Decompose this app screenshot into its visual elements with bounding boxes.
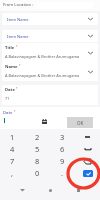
button[interactable]: space <box>75 143 100 155</box>
staticText: , <box>11 168 14 178</box>
button[interactable]: 1 <box>0 131 25 143</box>
staticText: 1 <box>10 132 15 142</box>
staticText: . <box>61 168 64 178</box>
button[interactable]: Item Name <box>2 30 98 42</box>
button[interactable]: Home <box>44 184 56 196</box>
button[interactable]: Item Name <box>2 13 98 25</box>
staticText: 5 <box>35 144 40 154</box>
staticText: Title <box>5 45 15 51</box>
button[interactable]: 8 <box>25 155 50 167</box>
button[interactable]: ok <box>75 167 100 179</box>
staticText: Name <box>5 64 18 70</box>
button[interactable]: , <box>0 167 25 179</box>
button[interactable]: Recents <box>72 184 84 196</box>
staticText: * <box>15 87 18 91</box>
button[interactable]: . <box>50 167 75 179</box>
staticText: 7 <box>10 156 15 166</box>
button[interactable]: 3 <box>50 131 75 143</box>
staticText: 9 <box>60 156 65 166</box>
staticText: Item Name <box>7 17 29 22</box>
staticText: From Location : <box>3 2 34 8</box>
staticText: 6 <box>60 144 65 154</box>
button[interactable]: Date <box>2 85 98 105</box>
button[interactable]: 7 <box>0 155 25 167</box>
button[interactable]: OK <box>67 117 93 128</box>
button[interactable]: 6 <box>50 143 75 155</box>
staticText: A.Balavinayagam & Brother Arumugama <box>5 54 80 59</box>
staticText: * <box>15 45 18 49</box>
button[interactable]: Hide keyboard <box>16 184 28 196</box>
staticText: 8 <box>35 156 40 166</box>
button[interactable]: Title <box>2 43 98 62</box>
staticText: 2 <box>35 132 40 142</box>
button[interactable]: 2 <box>25 131 50 143</box>
button[interactable]: 4 <box>0 143 25 155</box>
staticText: * <box>13 110 16 114</box>
button[interactable]: minus <box>75 131 100 143</box>
staticText: 71 <box>5 96 10 101</box>
staticText: 0 <box>35 168 40 178</box>
staticText: 3 <box>60 132 65 142</box>
button[interactable]: 0 <box>25 167 50 179</box>
staticText: 4 <box>10 144 15 154</box>
staticText: * <box>18 64 21 68</box>
staticText: Date <box>5 87 15 93</box>
button[interactable]: Name <box>2 62 98 81</box>
staticText: Item Name <box>7 34 29 39</box>
staticText: Date <box>3 110 13 116</box>
button[interactable]: Date <box>0 107 100 129</box>
button[interactable]: Pick date <box>42 119 47 124</box>
button[interactable]: 5 <box>25 143 50 155</box>
button[interactable]: 9 <box>50 155 75 167</box>
staticText: A.Balavinayagam & Brother Arumugama <box>5 73 80 78</box>
button[interactable]: del <box>75 155 100 167</box>
staticText: OK <box>77 120 84 126</box>
